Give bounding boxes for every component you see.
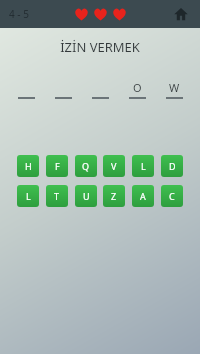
button[interactable]: L <box>132 155 154 177</box>
staticText: L <box>26 190 31 202</box>
button[interactable]: V <box>103 155 125 177</box>
button[interactable]: A <box>132 185 154 207</box>
staticText: A <box>140 190 146 202</box>
button[interactable]: U <box>75 185 97 207</box>
button[interactable]: Z <box>103 185 125 207</box>
button[interactable]: L <box>17 185 39 207</box>
staticText: U <box>83 190 90 202</box>
staticText: W <box>169 80 180 94</box>
staticText: F <box>55 160 60 172</box>
button[interactable]: F <box>46 155 68 177</box>
staticText: V <box>111 160 117 172</box>
button[interactable]: T <box>46 185 68 207</box>
staticText: Q <box>82 160 90 172</box>
staticText: T <box>54 190 60 202</box>
staticText: O <box>133 80 142 94</box>
button[interactable]: C <box>161 185 183 207</box>
button[interactable]: Q <box>75 155 97 177</box>
button[interactable]: D <box>161 155 183 177</box>
staticText: C <box>169 190 175 202</box>
button[interactable]: Home <box>170 3 192 25</box>
staticText: H <box>25 160 32 172</box>
staticText: Z <box>111 190 117 202</box>
staticText: 4 - 5 <box>9 7 29 21</box>
button[interactable]: H <box>17 155 39 177</box>
staticText: L <box>141 160 146 172</box>
staticText: D <box>169 160 176 172</box>
staticText: İZİN VERMEK <box>0 38 200 56</box>
